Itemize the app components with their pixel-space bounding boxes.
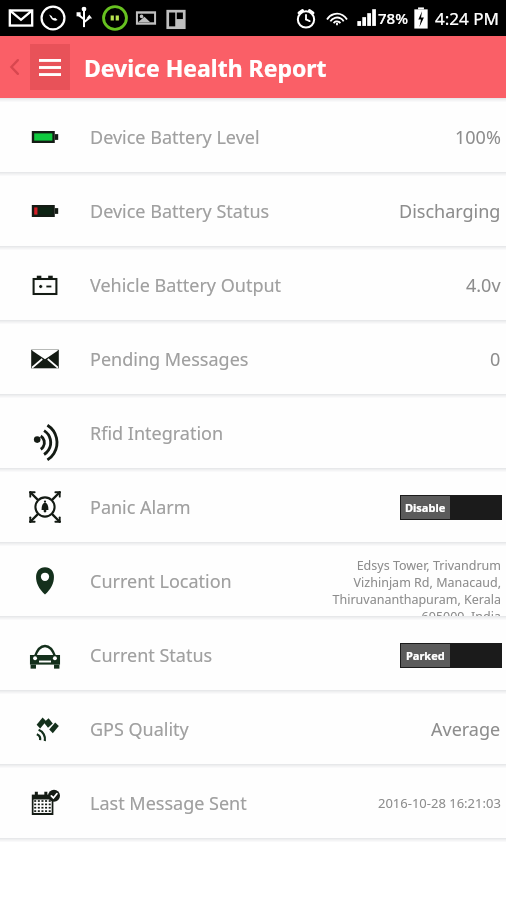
staticText: Edsys Tower, Trivandrum Vizhinjam Rd, Ma… (323, 557, 501, 616)
staticText: 2016-10-28 16:21:03 (378, 794, 501, 812)
button[interactable]: Open navigation menu (30, 44, 70, 90)
staticText: 4.0v (466, 273, 501, 298)
button[interactable]: Panic Alarm (0, 472, 506, 542)
staticText: Average (431, 717, 501, 742)
staticText: Current Location (90, 569, 232, 594)
staticText: Rfid Integration (90, 421, 224, 446)
staticText: Disable (405, 500, 446, 515)
staticText: Current Status (90, 643, 213, 668)
staticText: 78% (378, 8, 408, 28)
button[interactable]: Current Status (0, 620, 506, 690)
staticText: Vehicle Battery Output (90, 273, 282, 298)
button[interactable]: Vehicle Battery Output (0, 250, 506, 320)
staticText: Device Battery Level (90, 125, 260, 150)
button[interactable]: Device Battery Level (0, 102, 506, 172)
staticText: Pending Messages (90, 347, 249, 372)
button[interactable]: Pending Messages (0, 324, 506, 394)
staticText: Panic Alarm (90, 495, 191, 520)
button[interactable]: Device Battery Status (0, 176, 506, 246)
button[interactable]: GPS Quality (0, 694, 506, 764)
staticText: 0 (490, 347, 501, 372)
staticText: Device Battery Status (90, 199, 270, 224)
button[interactable]: Parked (400, 643, 502, 668)
staticText: 4:24 PM (435, 7, 499, 30)
button[interactable]: Last Message Sent (0, 768, 506, 838)
staticText: Discharging (399, 199, 501, 224)
button[interactable]: Rfid Integration (0, 398, 506, 468)
staticText: Last Message Sent (90, 791, 247, 816)
staticText: Parked (406, 648, 445, 663)
button[interactable]: Current Location (0, 546, 506, 616)
button[interactable]: Back (0, 36, 30, 98)
button[interactable]: Disable (400, 495, 502, 520)
staticText: GPS Quality (90, 717, 189, 742)
staticText: Device Health Report (84, 52, 327, 83)
staticText: 100% (455, 125, 501, 150)
